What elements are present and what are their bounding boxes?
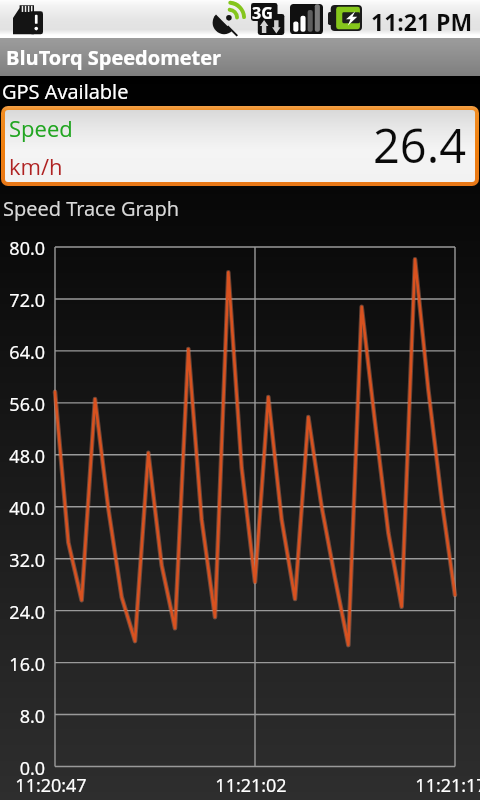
button[interactable]: Speed [5,110,475,182]
staticText: 40.0 [0,496,45,521]
staticText: 3G [252,2,273,24]
staticText: 24.0 [0,600,45,625]
staticText: 72.0 [0,288,45,313]
button[interactable]: BluTorq Speedometer [0,38,480,76]
staticText: 80.0 [0,236,45,261]
staticText: GPS Available [2,78,129,105]
staticText: 26.4 [373,113,467,177]
staticText: 11:21 PM [371,6,473,37]
staticText: 0.0 [0,756,45,781]
staticText: 8.0 [0,704,45,729]
staticText: km/h [9,151,63,181]
staticText: 32.0 [0,548,45,573]
staticText: 11:20:47 [0,773,111,798]
other: Signal strength [290,3,323,35]
staticText: 48.0 [0,444,45,469]
staticText: 16.0 [0,652,45,677]
other: GPS active [213,0,250,36]
staticText: 64.0 [0,340,45,365]
other: Battery charging [328,5,362,31]
staticText: 56.0 [0,392,45,417]
staticText: Speed [9,113,73,143]
other: SD card warning [13,3,43,35]
staticText: 11:21:17 [391,773,480,798]
staticText: 11:21:02 [191,773,311,798]
other: 3G data [251,3,285,35]
staticText: BluTorq Speedometer [6,44,222,71]
staticText: Speed Trace Graph [3,195,179,222]
